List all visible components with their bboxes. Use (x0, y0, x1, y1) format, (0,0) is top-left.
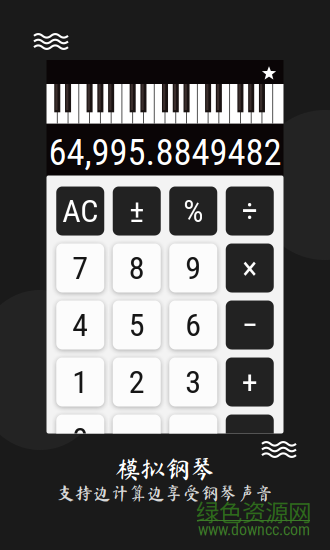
staticText: 模拟钢琴 (115, 456, 215, 481)
button[interactable]: + (226, 357, 274, 406)
staticText: 2 (129, 363, 145, 401)
staticText: www.downcc.com (198, 520, 310, 539)
staticText: ÷ (242, 192, 258, 230)
staticText: 1 (72, 363, 88, 401)
staticText: 0 (72, 420, 88, 458)
staticText: 64,995.8849482 (48, 131, 281, 174)
button[interactable]: 5 (113, 300, 161, 349)
button[interactable]: 7 (56, 243, 104, 292)
staticText: × (242, 249, 257, 287)
button[interactable]: − (226, 300, 274, 349)
staticText: = (242, 420, 257, 458)
staticText: − (242, 306, 258, 344)
button[interactable]: . (113, 414, 161, 463)
button[interactable]: 0 (56, 414, 104, 463)
staticText: + (242, 363, 258, 401)
staticText: 7 (72, 249, 88, 287)
button[interactable]: % (169, 186, 217, 235)
button[interactable]: × (226, 243, 274, 292)
staticText: ± (129, 192, 144, 230)
staticText: 支持边计算边享受钢琴声音 (57, 484, 273, 502)
button[interactable]: 9 (169, 243, 217, 292)
staticText: AC (62, 192, 98, 230)
staticText: 9 (185, 249, 201, 287)
button[interactable]: = (226, 414, 274, 463)
staticText: 4 (72, 306, 88, 344)
button[interactable]: ÷ (226, 186, 274, 235)
button[interactable]: 1 (56, 357, 104, 406)
staticText: . (133, 420, 141, 458)
button[interactable]: 3 (169, 357, 217, 406)
button[interactable]: ± (113, 186, 161, 235)
staticText: 3 (185, 363, 201, 401)
staticText: 绿色资源网 (196, 494, 311, 528)
button[interactable]: 6 (169, 300, 217, 349)
button[interactable]: 8 (113, 243, 161, 292)
button[interactable]: 4 (56, 300, 104, 349)
staticText: 8 (129, 249, 145, 287)
staticText: 6 (185, 306, 201, 344)
button[interactable]: 2 (113, 357, 161, 406)
button[interactable] (169, 414, 217, 463)
button[interactable]: AC (56, 186, 104, 235)
staticText: 5 (129, 306, 145, 344)
staticText: % (183, 192, 203, 230)
